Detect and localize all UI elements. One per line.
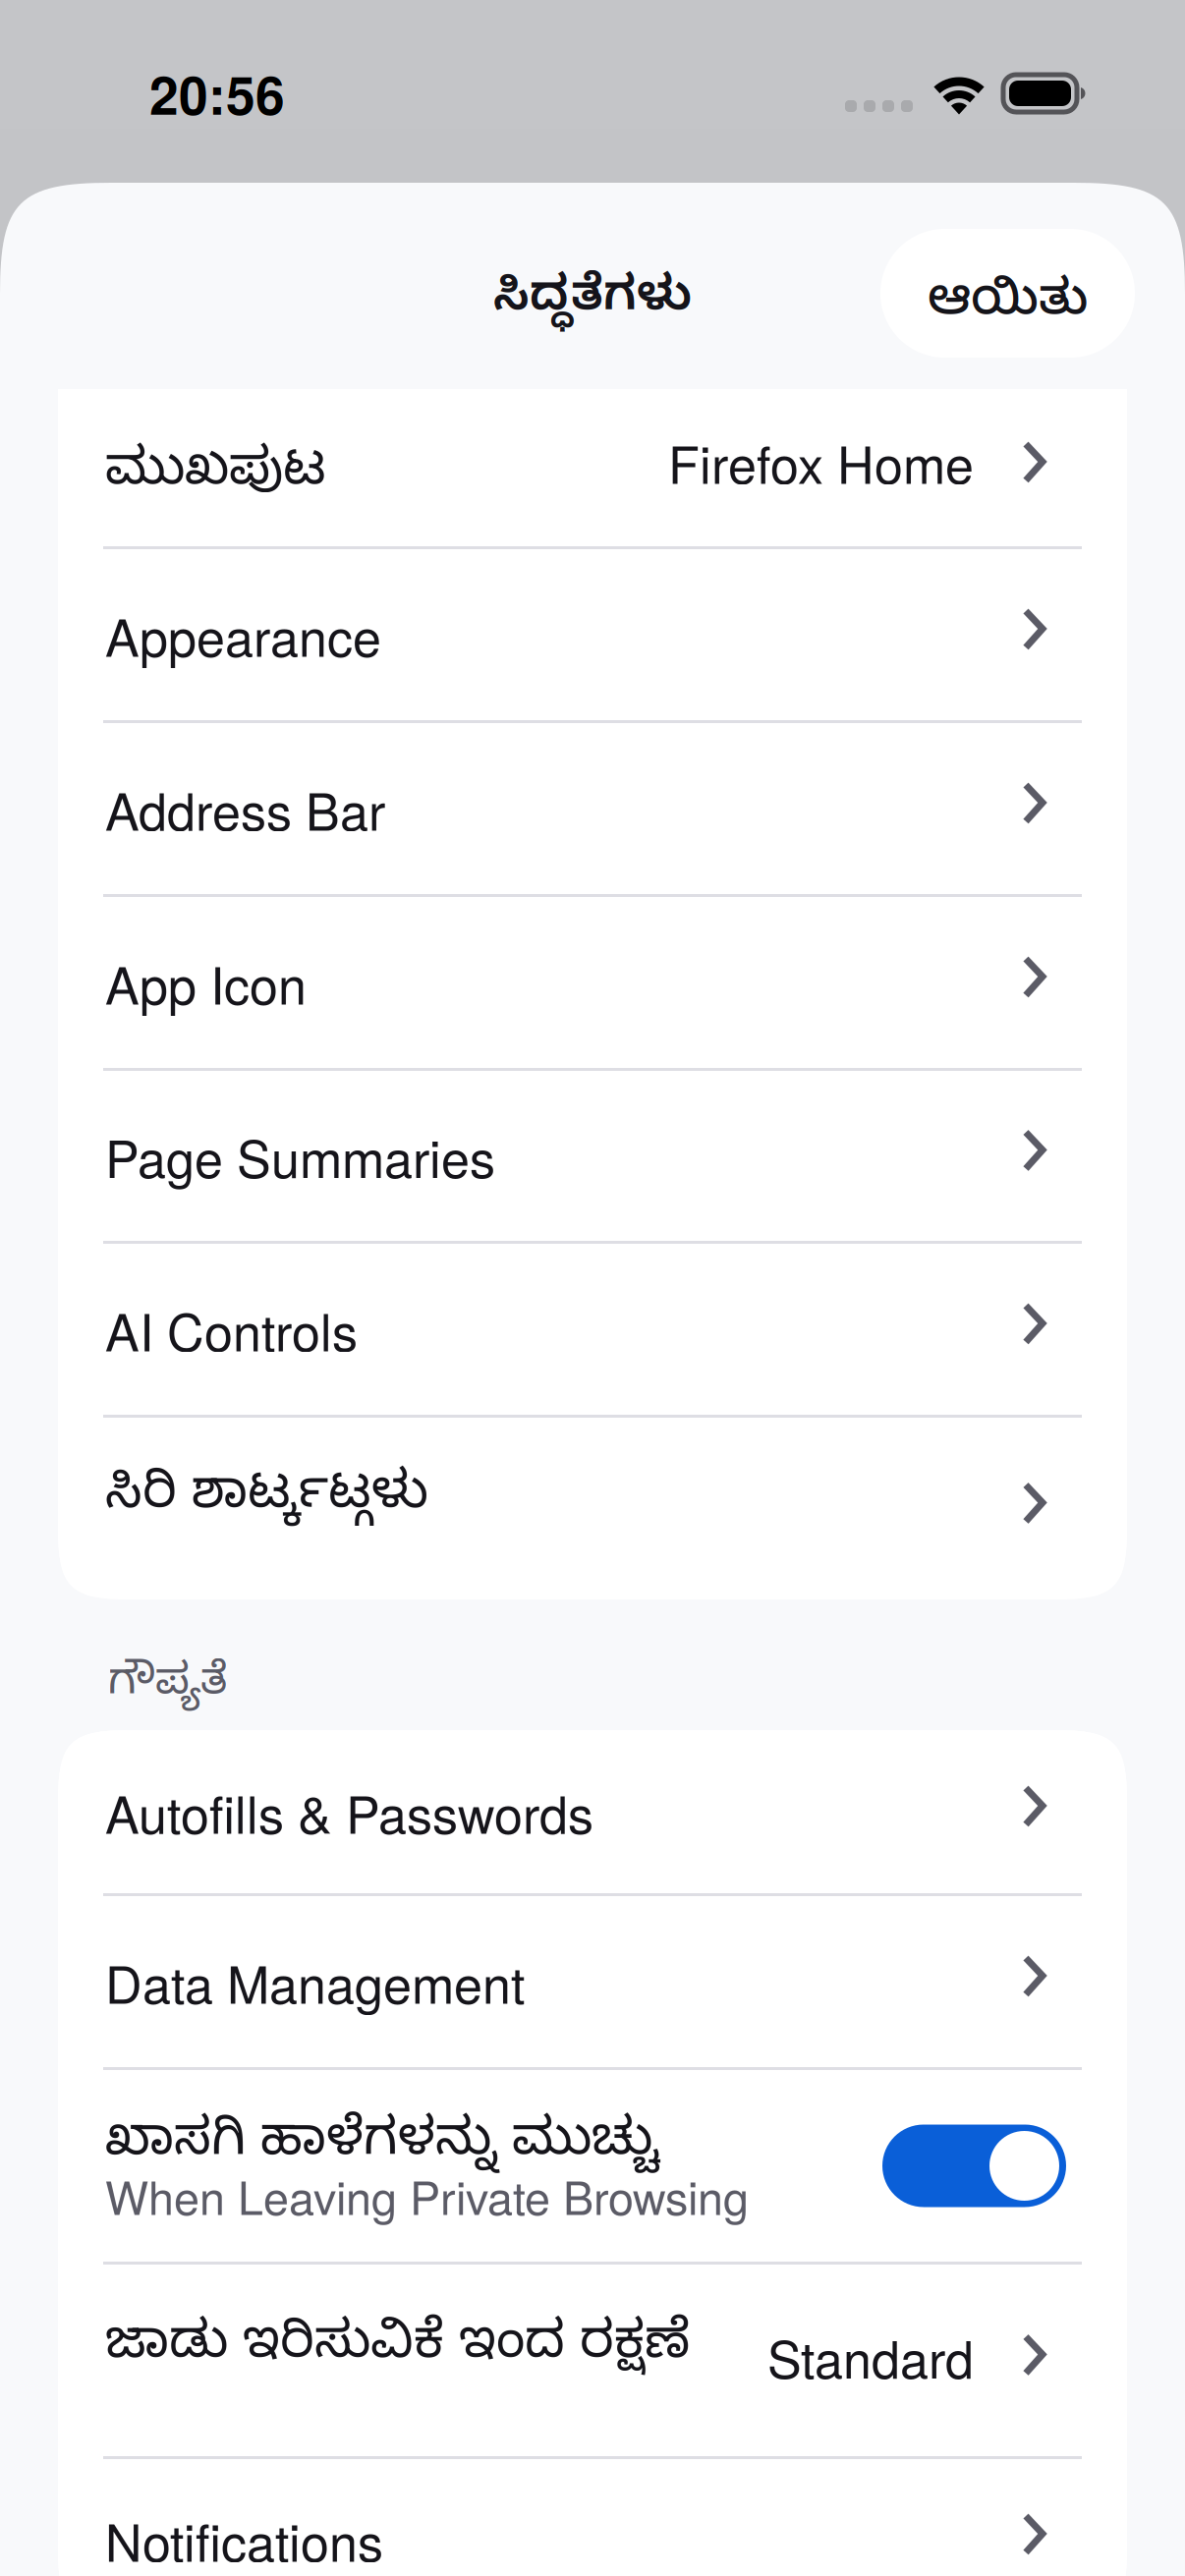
button[interactable]: Data Management xyxy=(58,1896,1127,2067)
staticText: ಜಾಡು ಇರಿಸುವಿಕೆ ಇಂದ ರಕ್ಷಣೆ xyxy=(105,2314,690,2385)
staticText: Autofills & Passwords xyxy=(105,1775,593,1848)
staticText: Page Summaries xyxy=(105,1119,495,1193)
staticText: ಖಾಸಗಿ ಹಾಳೆಗಳನ್ನು ಮುಚ್ಚು xyxy=(105,2111,659,2182)
button[interactable]: App Icon xyxy=(58,897,1127,1068)
staticText: Appearance xyxy=(105,598,381,671)
staticText: ಆಯಿತು xyxy=(928,273,1088,341)
button[interactable]: ಸಿರಿ ಶಾರ್ಟ್ಕಟ್ಗಳು xyxy=(58,1418,1127,1599)
staticText: Data Management xyxy=(105,1945,525,2018)
staticText: Firefox Home xyxy=(668,425,974,498)
staticText: ಸಿದ್ಧತೆಗಳು xyxy=(493,270,692,335)
button[interactable]: AI Controls xyxy=(58,1244,1127,1415)
button[interactable]: Notifications xyxy=(58,2459,1127,2576)
button[interactable]: ಮುಖಪುಟ xyxy=(58,389,1127,546)
button[interactable]: ಆಯಿತು xyxy=(880,229,1135,358)
staticText: Address Bar xyxy=(105,772,385,845)
button[interactable]: ಖಾಸಗಿ ಹಾಳೆಗಳನ್ನು ಮುಚ್ಚು xyxy=(58,2070,1127,2262)
staticText: When Leaving Private Browsing xyxy=(105,2162,749,2228)
staticText: App Icon xyxy=(105,946,307,1019)
button[interactable]: Autofills & Passwords xyxy=(58,1730,1127,1893)
staticText: Notifications xyxy=(105,2503,383,2576)
button[interactable]: Address Bar xyxy=(58,723,1127,894)
staticText: ಮುಖಪುಟ xyxy=(105,441,325,512)
staticText: ಗೌಪ್ಯತೆ xyxy=(108,1658,227,1717)
staticText: Standard xyxy=(767,2320,974,2393)
staticText: AI Controls xyxy=(105,1293,358,1366)
staticText: ಸಿರಿ ಶಾರ್ಟ್ಕಟ್ಗಳು xyxy=(105,1464,428,1535)
button[interactable]: Page Summaries xyxy=(58,1071,1127,1241)
staticText: 20:56 xyxy=(149,56,285,131)
button[interactable]: Appearance xyxy=(58,549,1127,720)
button[interactable]: ಜಾಡು ಇರಿಸುವಿಕೆ ಇಂದ ರಕ್ಷಣೆ xyxy=(58,2265,1127,2456)
